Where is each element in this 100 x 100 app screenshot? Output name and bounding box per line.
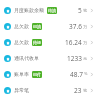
button[interactable]: 总欠款: [0, 18, 100, 34]
staticText: 通讯代收单: [14, 55, 39, 61]
staticText: %: [84, 71, 88, 77]
button[interactable]: 月度账款余额: [0, 2, 100, 18]
button[interactable]: 异常笔: [0, 82, 100, 98]
button[interactable]: 总欠款: [0, 34, 100, 50]
staticText: 元: [83, 56, 88, 61]
staticText: 37.6: [69, 22, 82, 31]
staticText: 笔: [83, 88, 88, 93]
staticText: 16.24: [65, 38, 82, 47]
staticText: 总欠款: [14, 23, 29, 29]
staticText: 总欠款: [14, 39, 29, 45]
button[interactable]: 通讯代收单: [0, 50, 100, 66]
staticText: 账单率: [14, 71, 29, 77]
staticText: 5: [78, 6, 82, 15]
staticText: 万: [83, 24, 88, 29]
staticText: 异常笔: [14, 87, 29, 93]
staticText: 笔: [83, 8, 88, 13]
button[interactable]: 账单率: [0, 66, 100, 82]
staticText: 待还: [33, 40, 41, 45]
staticText: 48.7: [70, 70, 83, 79]
staticText: 已清: [33, 24, 41, 29]
staticText: 万: [83, 40, 88, 45]
staticText: 月度账款余额: [14, 7, 44, 13]
staticText: 结清: [48, 8, 56, 13]
staticText: 已付: [33, 72, 41, 77]
staticText: 1233: [67, 54, 82, 63]
staticText: 23: [74, 86, 82, 95]
